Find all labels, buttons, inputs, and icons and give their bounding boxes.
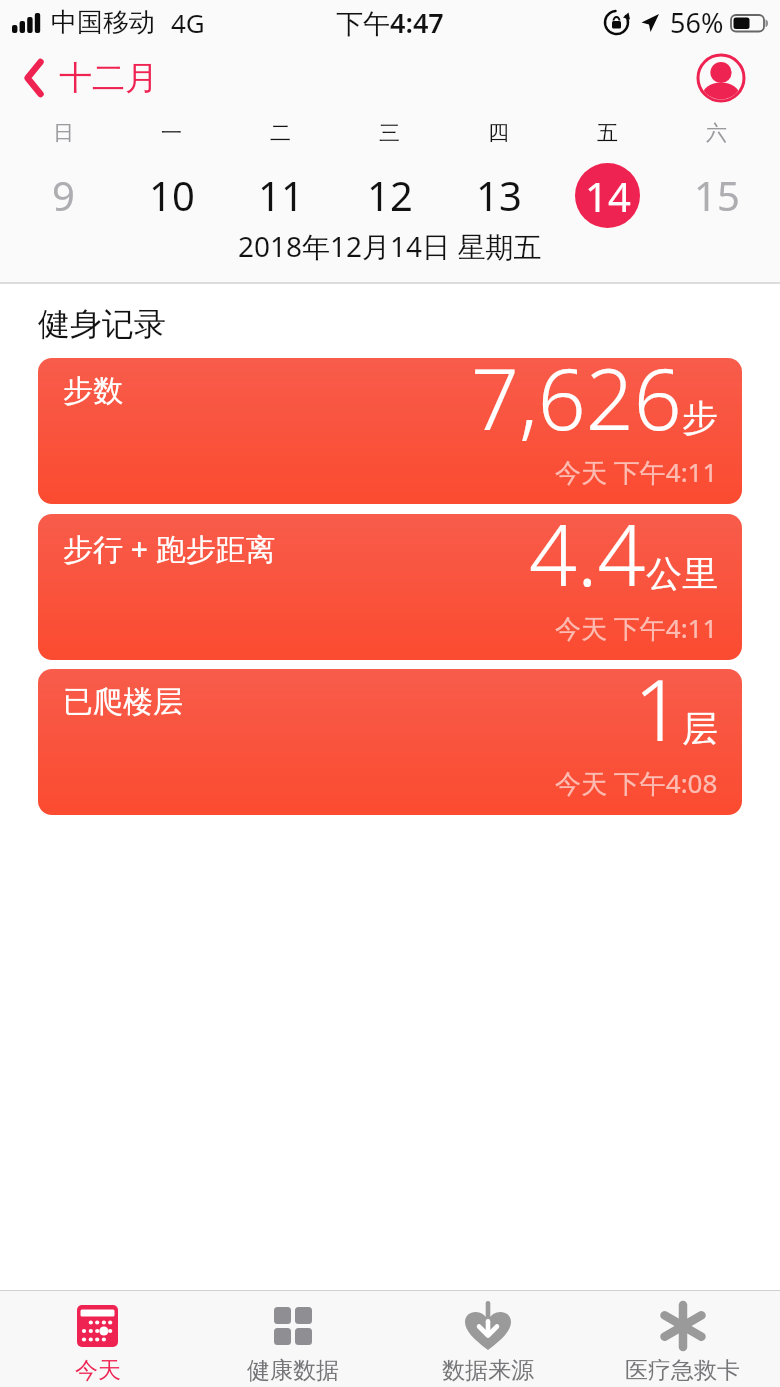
staticText: 步 <box>682 395 718 440</box>
staticText: 1 <box>634 669 682 765</box>
button[interactable]: 11 <box>226 154 335 236</box>
staticText: 十二月 <box>59 57 158 99</box>
staticText: 层 <box>682 706 718 751</box>
staticText: 今天 下午4:11 <box>555 454 718 486</box>
button[interactable]: 9 <box>9 154 117 236</box>
staticText: 今天 下午4:11 <box>555 610 718 642</box>
staticText: 56% <box>670 4 724 41</box>
staticText: 4.4 <box>529 514 646 610</box>
staticText: 一 <box>161 120 182 146</box>
staticText: 11 <box>258 168 304 222</box>
staticText: 9 <box>52 168 75 222</box>
staticText: 步行 + 跑步距离 <box>63 528 276 569</box>
staticText: 五 <box>597 120 618 146</box>
staticText: 公里 <box>646 551 718 596</box>
staticText: 14 <box>585 169 631 223</box>
staticText: 2018年12月14日 星期五 <box>238 227 542 265</box>
staticText: 二 <box>270 120 291 146</box>
staticText: 数据来源 <box>442 1356 534 1382</box>
button[interactable]: 14 <box>553 154 662 236</box>
staticText: 10 <box>149 168 195 222</box>
button[interactable]: 数据来源 <box>390 1291 585 1387</box>
button[interactable] <box>696 53 746 103</box>
staticText: 13 <box>476 168 522 222</box>
staticText: 四 <box>488 120 509 146</box>
button[interactable]: 今天 <box>0 1291 195 1387</box>
button[interactable]: 13 <box>444 154 553 236</box>
button[interactable]: 10 <box>117 154 226 236</box>
staticText: 12 <box>367 168 413 222</box>
staticText: 医疗急救卡 <box>625 1356 740 1382</box>
staticText: 15 <box>694 168 740 222</box>
button[interactable]: 15 <box>662 154 771 236</box>
staticText: 健身记录 <box>38 304 166 344</box>
button[interactable]: 步数 <box>38 358 742 504</box>
button[interactable]: 12 <box>335 154 444 236</box>
staticText: 三 <box>379 120 400 146</box>
staticText: 日 <box>53 120 74 146</box>
staticText: 已爬楼层 <box>63 683 183 721</box>
button[interactable]: 十二月 <box>24 57 158 99</box>
staticText: 步数 <box>63 372 123 410</box>
staticText: 中国移动 <box>51 6 155 39</box>
button[interactable]: 步行 + 跑步距离 <box>38 514 742 660</box>
button[interactable]: 健康数据 <box>195 1291 390 1387</box>
staticText: 今天 <box>75 1356 121 1382</box>
button[interactable]: 已爬楼层 <box>38 669 742 815</box>
staticText: 下午4:47 <box>336 4 444 41</box>
staticText: 健康数据 <box>247 1356 339 1382</box>
staticText: 4G <box>171 5 205 40</box>
staticText: 六 <box>706 120 727 146</box>
button[interactable]: 医疗急救卡 <box>585 1291 780 1387</box>
staticText: 今天 下午4:08 <box>555 765 718 797</box>
staticText: 7,626 <box>471 358 682 454</box>
